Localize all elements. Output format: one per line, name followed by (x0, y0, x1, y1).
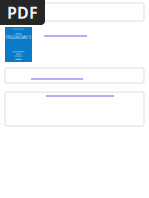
button[interactable]: PDF (0, 0, 45, 25)
staticText: PDF (7, 2, 38, 23)
staticText: ERGONOMICS (6, 35, 31, 39)
